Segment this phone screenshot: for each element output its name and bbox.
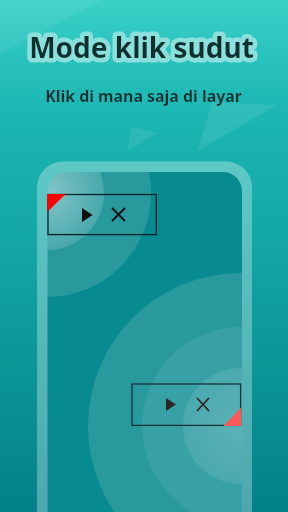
staticText: Mode klik sudut [29, 28, 254, 66]
staticText: Mode klik sudut [29, 28, 254, 66]
staticText: Klik di mana saja di layar [45, 85, 242, 107]
